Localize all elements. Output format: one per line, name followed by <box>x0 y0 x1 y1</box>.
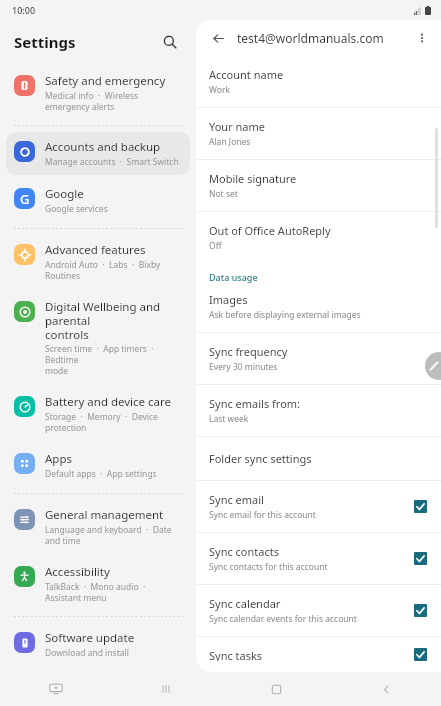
button[interactable]: Sync email <box>196 481 441 532</box>
staticText: Medical info · Wireless emergency alerts <box>45 90 184 112</box>
staticText: Off <box>209 240 222 252</box>
staticText: Your name <box>209 119 265 134</box>
staticText: Folder sync settings <box>209 451 312 466</box>
staticText: Google <box>45 186 84 202</box>
button[interactable]: Mobile signature <box>196 160 441 211</box>
button[interactable]: Sync calendar <box>196 585 441 636</box>
other: Sync contacts <box>414 552 427 565</box>
button[interactable]: Advanced features <box>6 235 190 288</box>
button[interactable]: Digital Wellbeing and parental controls <box>6 292 190 383</box>
button[interactable]: Account name <box>196 56 441 107</box>
staticText: Alan Jones <box>209 136 251 148</box>
staticText: Last week <box>209 413 249 425</box>
other: Sync email <box>414 500 427 513</box>
button[interactable]: Out of Office AutoReply <box>196 212 441 263</box>
button[interactable]: Search settings <box>158 30 182 54</box>
staticText: Sync email for this account <box>209 509 316 521</box>
staticText: Sync email <box>209 492 264 507</box>
staticText: Safety and emergency <box>45 73 166 89</box>
staticText: Data usage <box>209 271 258 283</box>
other: Sync calendar <box>414 604 427 617</box>
staticText: Accessibility <box>45 564 110 580</box>
staticText: Images <box>209 292 248 307</box>
staticText: Android Auto · Labs · Bixby Routines <box>45 259 184 281</box>
button[interactable]: Back <box>331 672 441 706</box>
staticText: Storage · Memory · Device protection <box>45 411 184 433</box>
staticText: 10:00 <box>12 4 36 16</box>
staticText: General management <box>45 507 164 523</box>
button[interactable]: Safety and emergency <box>6 66 190 119</box>
button[interactable]: Folder sync settings <box>196 437 441 480</box>
staticText: Sync tasks <box>209 648 263 661</box>
other: Sync tasks <box>414 648 427 661</box>
button[interactable]: Battery and device care <box>6 387 190 440</box>
staticText: Digital Wellbeing and parental controls <box>45 299 184 342</box>
button[interactable]: Edit <box>425 352 441 380</box>
button[interactable]: Accounts and backup <box>6 132 190 175</box>
staticText: TalkBack · Mono audio · Assistant menu <box>45 581 184 603</box>
button[interactable]: Accessibility <box>6 557 190 610</box>
staticText: Download and install <box>45 647 129 659</box>
staticText: Settings <box>14 32 158 52</box>
staticText: Screen time · App timers · Bedtime mode <box>45 343 184 376</box>
staticText: Mobile signature <box>209 171 297 186</box>
button[interactable]: Sync contacts <box>196 533 441 584</box>
staticText: Sync frequency <box>209 344 288 359</box>
staticText: Ask before displaying external images <box>209 309 361 321</box>
button[interactable]: Recent apps <box>111 672 221 706</box>
button[interactable]: Apps <box>6 444 190 487</box>
button[interactable]: Data usage <box>196 263 441 285</box>
button[interactable]: Sync frequency <box>196 333 441 384</box>
staticText: Sync contacts for this account <box>209 561 328 573</box>
button[interactable]: General management <box>6 500 190 553</box>
button[interactable]: Your name <box>196 108 441 159</box>
staticText: Sync contacts <box>209 544 279 559</box>
staticText: Software update <box>45 630 135 646</box>
staticText: Default apps · App settings <box>45 468 157 480</box>
button[interactable]: Images <box>196 285 441 332</box>
staticText: Every 30 minutes <box>209 361 278 373</box>
staticText: G <box>20 190 30 208</box>
staticText: test4@worldmanuals.com <box>237 30 411 46</box>
button[interactable]: Software update <box>6 623 190 666</box>
button[interactable]: DeX mode <box>0 672 111 706</box>
staticText: Out of Office AutoReply <box>209 223 331 238</box>
staticText: Language and keyboard · Date and time <box>45 524 184 546</box>
staticText: Accounts and backup <box>45 139 161 155</box>
staticText: Sync calendar <box>209 596 281 611</box>
staticText: Sync emails from: <box>209 396 301 411</box>
button[interactable]: More options <box>411 27 433 49</box>
button[interactable]: Home <box>221 672 331 706</box>
button[interactable]: Sync emails from: <box>196 385 441 436</box>
button[interactable]: Sync tasks <box>196 637 441 672</box>
staticText: Apps <box>45 451 73 467</box>
staticText: Advanced features <box>45 242 146 258</box>
staticText: Account name <box>209 67 284 82</box>
button[interactable]: Back <box>206 26 230 50</box>
staticText: Battery and device care <box>45 394 172 410</box>
staticText: Not set <box>209 188 238 200</box>
staticText: Work <box>209 84 230 96</box>
button[interactable]: G <box>6 179 190 222</box>
staticText: Manage accounts · Smart Switch <box>45 156 179 168</box>
staticText: Google services <box>45 203 108 215</box>
staticText: Sync calendar events for this account <box>209 613 357 625</box>
